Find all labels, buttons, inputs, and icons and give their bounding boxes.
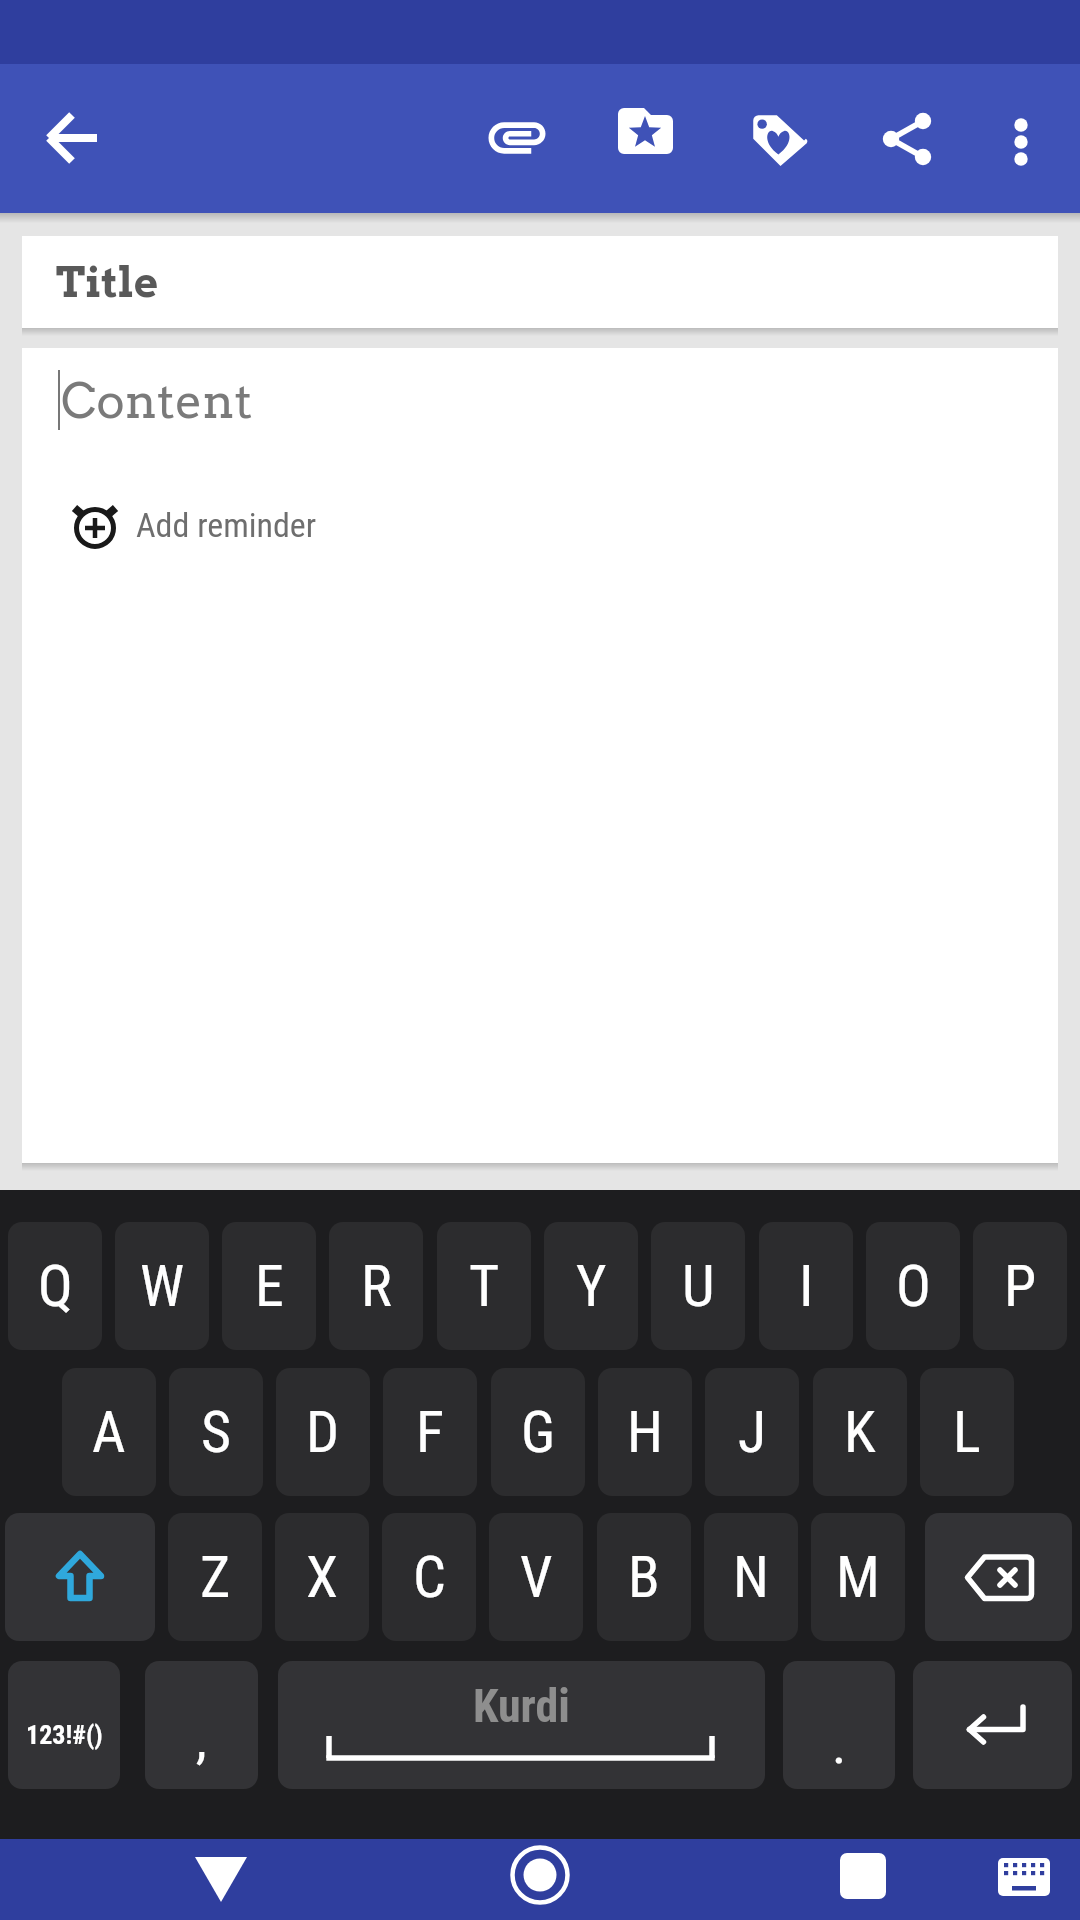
button[interactable]: K [813,1368,907,1496]
staticText: V [520,1543,553,1611]
button[interactable]: W [115,1222,209,1350]
button[interactable]: D [276,1368,370,1496]
button[interactable] [828,1843,898,1913]
button[interactable]: T [437,1222,531,1350]
button[interactable]: Q [8,1222,102,1350]
button[interactable] [913,1661,1072,1789]
staticText: Title [56,257,159,308]
staticText: Y [576,1252,607,1320]
button[interactable]: V [489,1513,583,1641]
staticText: A [92,1398,126,1466]
staticText: Z [200,1543,231,1611]
staticText: I [799,1252,814,1320]
button[interactable]: B [597,1513,691,1641]
button[interactable]: S [169,1368,263,1496]
button[interactable]: P [973,1222,1067,1350]
button[interactable] [24,89,122,187]
button[interactable]: Z [168,1513,262,1641]
button[interactable] [990,1848,1058,1908]
staticText: N [733,1543,769,1611]
button[interactable]: F [383,1368,477,1496]
staticText: Q [38,1252,73,1320]
staticText: G [521,1398,556,1466]
staticText: D [306,1398,340,1466]
staticText: S [201,1398,232,1466]
button[interactable] [186,1843,256,1913]
staticText: J [738,1398,767,1466]
staticText: P [1004,1252,1037,1320]
button[interactable] [468,89,566,187]
staticText: O [896,1252,931,1320]
staticText: , [196,1708,207,1771]
button[interactable]: E [222,1222,316,1350]
button[interactable]: R [329,1222,423,1350]
button[interactable] [729,89,827,187]
button[interactable] [972,89,1070,187]
button[interactable]: L [920,1368,1014,1496]
staticText: Add reminder [136,505,317,545]
button[interactable]: G [491,1368,585,1496]
button[interactable]: Y [544,1222,638,1350]
staticText: H [627,1398,663,1466]
button[interactable] [5,1513,155,1641]
staticText: U [682,1252,715,1320]
button[interactable]: C [382,1513,476,1641]
button[interactable]: J [705,1368,799,1496]
staticText: K [844,1398,876,1466]
button[interactable] [505,1840,575,1910]
button[interactable]: U [651,1222,745,1350]
button[interactable]: Add reminder [50,480,410,570]
staticText: Content [61,372,253,430]
staticText: C [413,1543,446,1611]
staticText: L [953,1398,981,1466]
staticText: X [306,1543,338,1611]
staticText: E [255,1252,284,1320]
button[interactable]: N [704,1513,798,1641]
button[interactable] [597,89,695,187]
button[interactable]: A [62,1368,156,1496]
staticText: 123!#() [26,1720,103,1750]
button[interactable]: I [759,1222,853,1350]
staticText: F [416,1398,444,1466]
staticText: W [140,1252,185,1320]
button[interactable]: Title [22,236,1058,328]
button[interactable]: 123!#() [8,1661,120,1789]
button[interactable]: Content [22,348,1058,1163]
button[interactable] [859,89,957,187]
staticText: M [836,1543,880,1611]
button[interactable]: , [145,1661,258,1789]
button[interactable]: O [866,1222,960,1350]
button[interactable]: H [598,1368,692,1496]
staticText: B [628,1543,660,1611]
staticText: R [361,1252,392,1320]
button[interactable]: M [811,1513,905,1641]
staticText: Kurdi [473,1679,570,1733]
button[interactable]: X [275,1513,369,1641]
button[interactable]: Kurdi [278,1661,765,1789]
staticText: T [469,1252,500,1320]
staticText: . [832,1713,847,1776]
button[interactable]: . [783,1661,895,1789]
button[interactable] [925,1513,1072,1641]
